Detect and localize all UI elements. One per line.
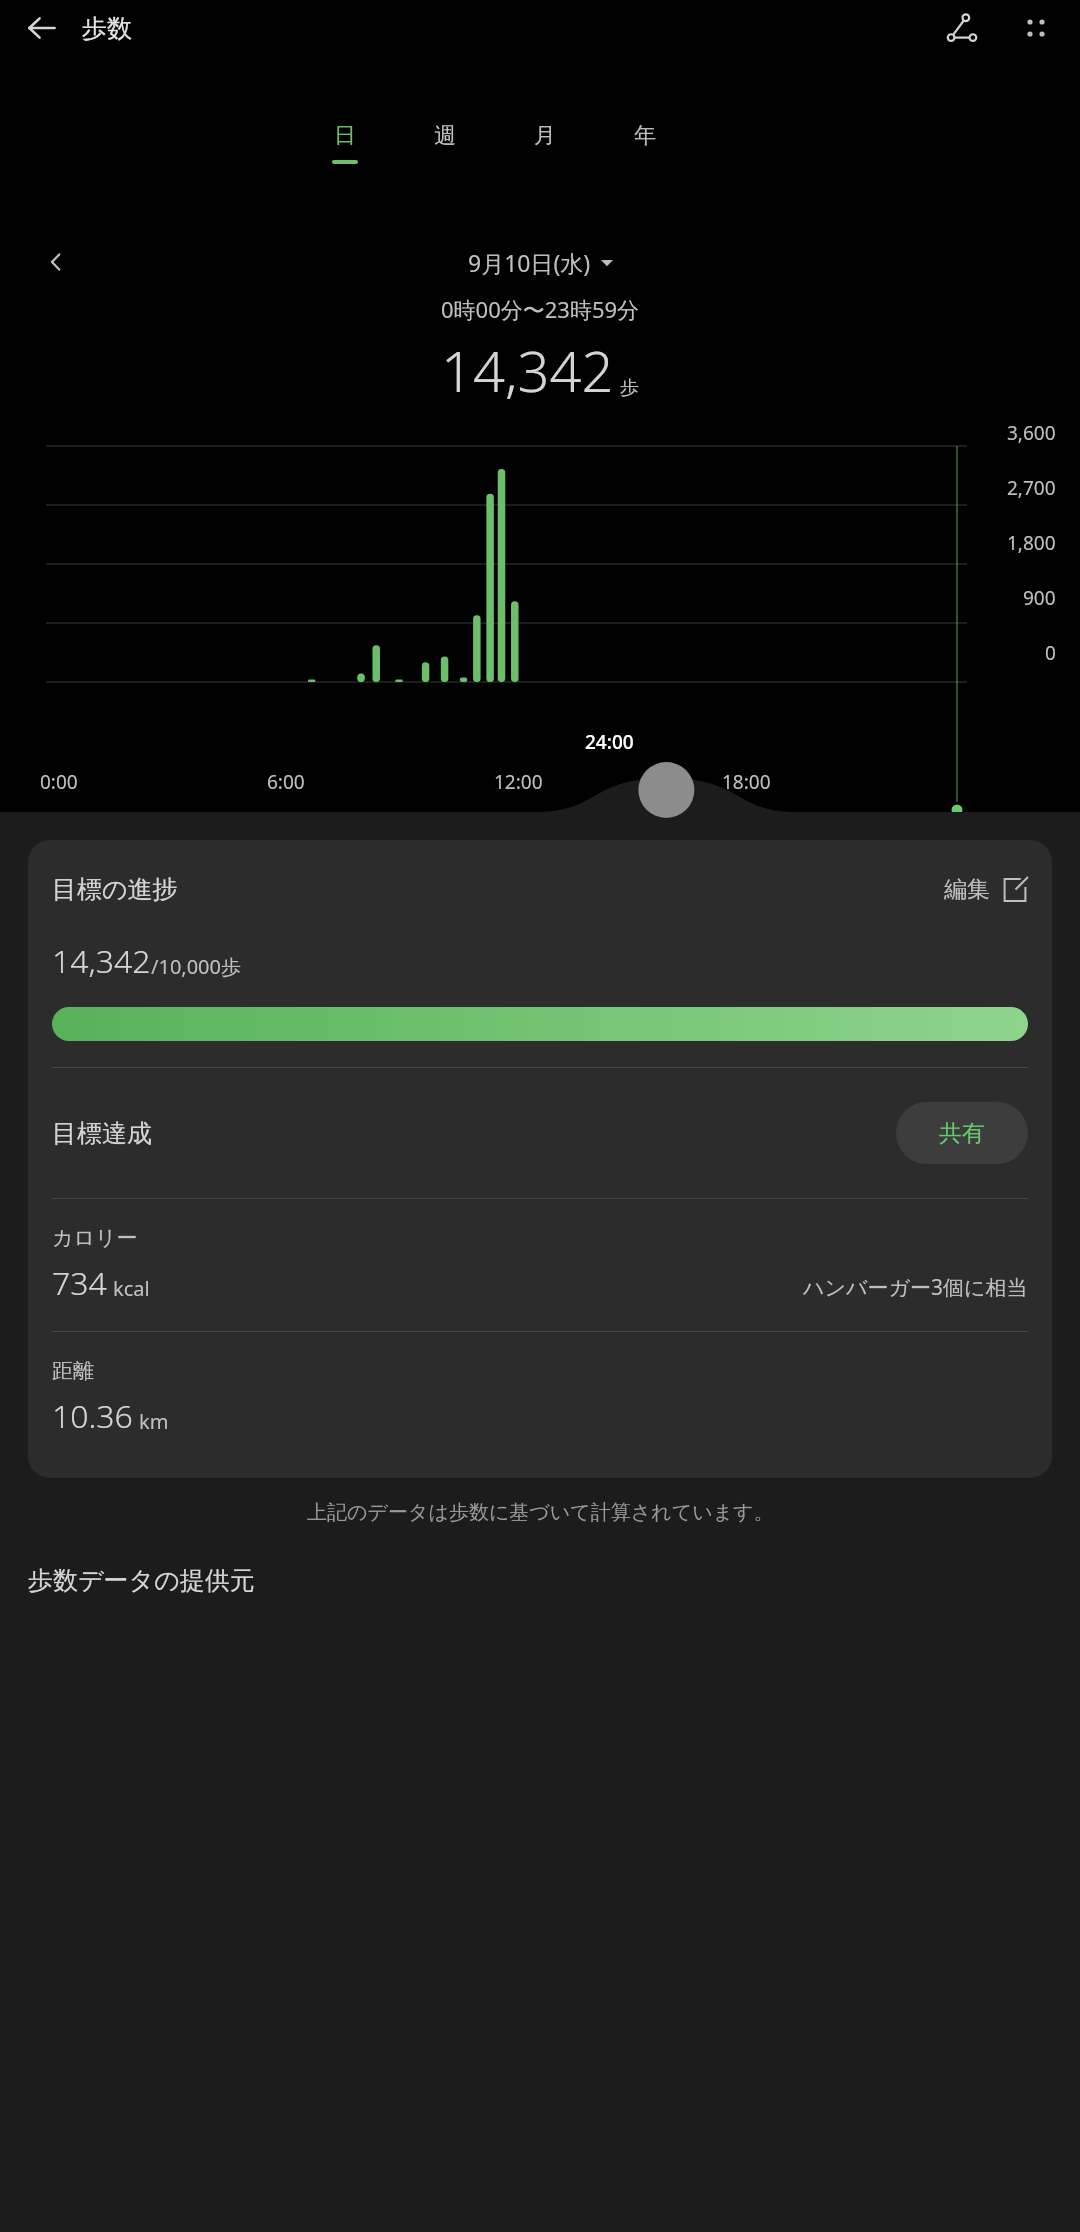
staticText: 共有 <box>939 1119 985 1148</box>
button[interactable]: 共有 <box>896 1102 1028 1164</box>
staticText: 歩数 <box>82 13 132 44</box>
staticText: 0 <box>1045 640 1056 666</box>
staticText: 734 <box>52 1261 107 1305</box>
staticText: 月 <box>534 122 556 150</box>
staticText: 上記のデータは歩数に基づいて計算されています。 <box>307 1500 774 1525</box>
staticText: 6:00 <box>267 769 305 795</box>
staticText: 18:00 <box>722 769 771 795</box>
staticText: 週 <box>434 122 456 150</box>
button[interactable]: 月 <box>524 110 566 164</box>
staticText: /10,000歩 <box>151 953 241 980</box>
staticText: ハンバーガー3個に相当 <box>803 1273 1028 1302</box>
staticText: 歩 <box>620 376 639 400</box>
staticText: 目標達成 <box>52 1118 152 1149</box>
staticText: 900 <box>1023 585 1056 611</box>
staticText: 2,700 <box>1007 475 1056 501</box>
button[interactable]: Share <box>934 0 990 56</box>
staticText: 12:00 <box>494 769 543 795</box>
staticText: 1,800 <box>1007 530 1056 556</box>
button[interactable]: 編集 <box>944 875 1028 904</box>
staticText: 14,342 <box>441 332 614 408</box>
staticText: カロリー <box>52 1225 138 1251</box>
staticText: 3,600 <box>1007 420 1056 446</box>
staticText: 10.36 <box>52 1394 133 1438</box>
staticText: 14,342 <box>52 939 151 983</box>
staticText: 日 <box>334 122 356 150</box>
staticText: km <box>139 1408 169 1435</box>
staticText: 距離 <box>52 1358 94 1384</box>
staticText: 0時00分〜23時59分 <box>441 294 640 324</box>
staticText: 9月10日(水) <box>468 247 591 278</box>
button[interactable]: 9月10日(水) <box>468 247 613 278</box>
button[interactable]: More options <box>1008 0 1064 56</box>
button[interactable]: Previous day <box>36 242 76 282</box>
button[interactable]: 日 <box>324 110 366 164</box>
staticText: 目標の進捗 <box>52 874 178 905</box>
staticText: kcal <box>113 1275 150 1302</box>
button[interactable]: Back <box>16 2 68 54</box>
button[interactable]: 年 <box>624 110 666 164</box>
staticText: 編集 <box>944 875 990 904</box>
staticText: 0:00 <box>40 769 78 795</box>
staticText: 年 <box>634 122 656 150</box>
button[interactable]: 週 <box>424 110 466 164</box>
staticText: 24:00 <box>585 729 634 755</box>
staticText: 歩数データの提供元 <box>28 1565 255 1596</box>
